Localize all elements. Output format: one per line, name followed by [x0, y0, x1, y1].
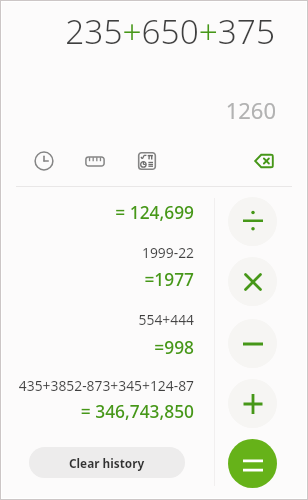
button[interactable]: Multiply	[228, 257, 277, 306]
button[interactable]: Subtract	[228, 319, 277, 368]
button[interactable]: Divide	[228, 197, 277, 246]
button[interactable]: = 346,743,850	[0, 399, 194, 423]
button[interactable]: = 124,699	[0, 200, 194, 224]
button[interactable]: 554+444	[0, 310, 194, 329]
button[interactable]: Unit converter	[77, 143, 113, 179]
button[interactable]: Clear history	[29, 447, 185, 478]
button[interactable]: Scientific calculator	[129, 143, 165, 179]
staticText: Clear history	[69, 455, 145, 471]
button[interactable]: Add	[228, 379, 277, 428]
staticText: 1260	[0, 95, 276, 125]
button[interactable]: Equals	[228, 439, 277, 488]
button[interactable]: =1977	[0, 267, 194, 291]
button[interactable]: Backspace	[246, 143, 282, 179]
button[interactable]: 435+3852-873+345+124-87	[0, 376, 194, 395]
button[interactable]: 1999-22	[0, 243, 194, 262]
button[interactable]: History	[26, 143, 62, 179]
staticText: 235+650+375	[0, 8, 275, 53]
button[interactable]: =998	[0, 335, 194, 359]
